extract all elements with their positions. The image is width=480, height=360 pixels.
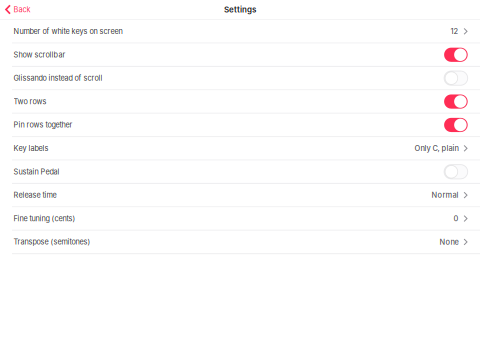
button[interactable]: Key labels (0, 137, 480, 161)
staticText: Pin rows together (14, 120, 73, 129)
staticText: Back (14, 5, 31, 14)
button[interactable]: Fine tuning (cents) (0, 207, 480, 231)
staticText: Glissando instead of scroll (14, 74, 103, 83)
button[interactable]: Sustain Pedal (0, 161, 480, 184)
button[interactable]: Glissando instead of scroll (0, 67, 480, 90)
staticText: Transpose (semitones) (14, 237, 91, 246)
button[interactable]: Transpose (semitones) (0, 231, 480, 254)
staticText: Fine tuning (cents) (14, 214, 76, 223)
staticText: Number of white keys on screen (14, 27, 123, 36)
staticText: 0 (453, 214, 458, 223)
staticText: Settings (224, 5, 256, 14)
button[interactable]: Back (0, 0, 37, 19)
staticText: Normal (431, 191, 458, 200)
button[interactable]: Pin rows together (0, 114, 480, 137)
staticText: Sustain Pedal (14, 167, 60, 176)
staticText: 12 (450, 27, 458, 36)
button[interactable]: Number of white keys on screen (0, 20, 480, 44)
staticText: Key labels (14, 144, 49, 153)
staticText: Two rows (14, 97, 47, 106)
staticText: None (439, 237, 458, 246)
button[interactable]: Release time (0, 184, 480, 207)
staticText: Only C, plain (414, 144, 458, 153)
button[interactable]: Two rows (0, 90, 480, 114)
staticText: Show scrollbar (14, 50, 66, 59)
button[interactable]: Show scrollbar (0, 44, 480, 67)
staticText: Release time (14, 191, 57, 200)
